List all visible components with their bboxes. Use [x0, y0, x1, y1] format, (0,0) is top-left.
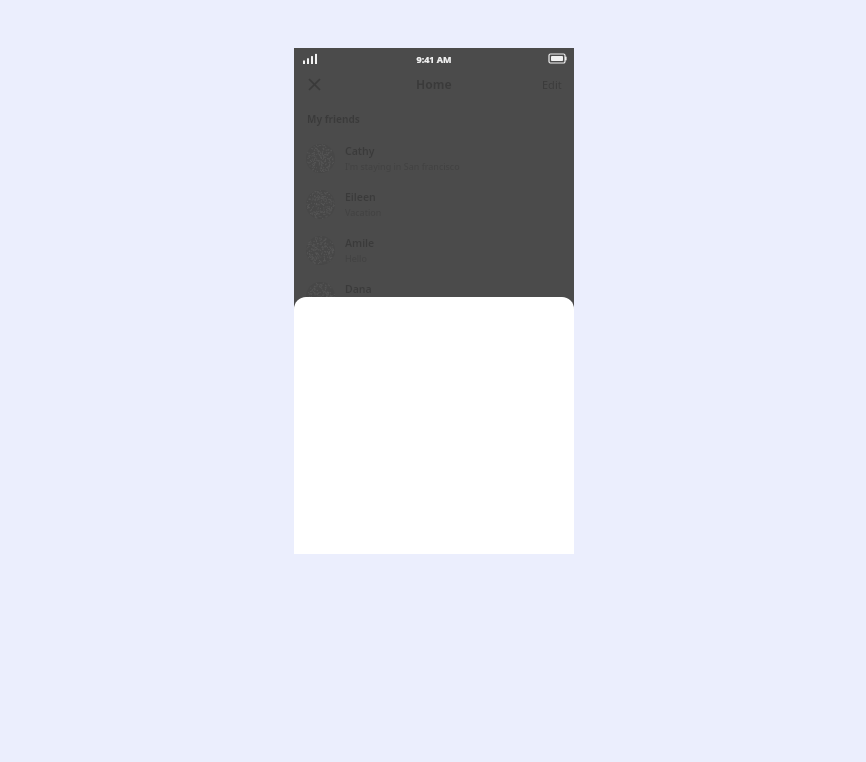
staticText: 9:41 AM — [416, 53, 452, 65]
button[interactable]: Edit — [538, 73, 566, 96]
button[interactable]: Close — [300, 70, 328, 98]
button[interactable]: Dana — [294, 273, 574, 319]
staticText: My friends — [307, 112, 360, 126]
button[interactable] — [294, 297, 574, 554]
staticText: Cathy — [345, 144, 375, 158]
staticText: Edit — [542, 77, 562, 92]
staticText: Eileen — [345, 190, 376, 204]
staticText: Home — [416, 76, 452, 92]
staticText: Dana — [345, 282, 372, 296]
staticText: Amile — [345, 236, 375, 250]
